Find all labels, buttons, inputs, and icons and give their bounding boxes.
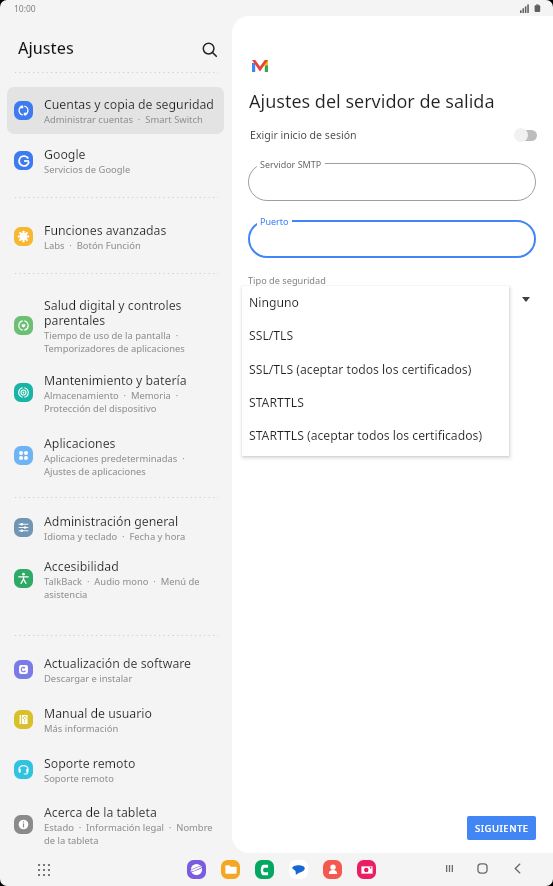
staticText: Ajustes de aplicaciones (44, 465, 146, 478)
button[interactable]: Cuentas y copia de seguridad (7, 87, 224, 134)
button[interactable]: Recents (437, 856, 462, 881)
button[interactable]: Mantenimiento y batería (7, 363, 224, 422)
button[interactable]: Acerca de la tableta (7, 795, 224, 854)
staticText: Ninguno (249, 294, 299, 311)
button[interactable]: Contacts (255, 860, 274, 879)
staticText: Soporte remoto (44, 772, 114, 785)
staticText: Protección del dispositivo (44, 402, 157, 415)
staticText: Estado · Información legal · Nombre (44, 821, 213, 834)
button[interactable]: Google (7, 137, 224, 184)
staticText: SSL/TLS (aceptar todos los certificados) (249, 361, 472, 378)
button[interactable]: Actualización de software (7, 646, 224, 693)
staticText: Ajustes del servidor de salida (249, 89, 495, 114)
button[interactable]: Soporte remoto (7, 746, 224, 793)
staticText: Tipo de seguridad (248, 274, 326, 287)
button[interactable]: Camera (357, 860, 376, 879)
staticText: Ajustes (18, 37, 74, 59)
staticText: Salud digital y controles parentales (44, 297, 182, 329)
staticText: Temporizadores de aplicaciones (44, 342, 185, 355)
staticText: SIGUIENTE (475, 822, 529, 835)
staticText: Administración general (44, 513, 179, 530)
button[interactable]: Search (195, 35, 224, 64)
button[interactable]: Accesibilidad (7, 549, 224, 608)
button[interactable]: Back (505, 856, 530, 881)
button[interactable]: Internet (187, 860, 206, 879)
button[interactable] (248, 163, 536, 201)
staticText: Aplicaciones predeterminadas · (44, 452, 185, 465)
button[interactable]: Account (323, 860, 342, 879)
button[interactable]: Ninguno (242, 286, 509, 319)
staticText: STARTTLS (249, 394, 304, 411)
staticText: Administrar cuentas · Smart Switch (44, 113, 203, 126)
staticText: Manual de usuario (44, 705, 152, 722)
staticText: Servicios de Google (44, 163, 131, 176)
staticText: Puerto (260, 215, 289, 227)
staticText: Google (44, 146, 86, 163)
staticText: Mantenimiento y batería (44, 372, 187, 389)
staticText: Labs · Botón Función (44, 239, 141, 252)
staticText: Servidor SMTP (260, 158, 322, 170)
staticText: TalkBack · Audio mono · Menú de (44, 575, 200, 588)
staticText: Almacenamiento · Memoria · (44, 389, 179, 402)
button[interactable]: Administración general (7, 504, 224, 551)
staticText: Funciones avanzadas (44, 222, 167, 239)
staticText: Descargar e instalar (44, 672, 133, 685)
staticText: Idioma y teclado · Fecha y hora (44, 530, 186, 543)
button[interactable] (248, 220, 536, 258)
button[interactable]: All apps (32, 858, 55, 881)
button[interactable]: Files (221, 860, 240, 879)
button[interactable]: Salud digital y controles parentales (7, 288, 224, 362)
staticText: asistencia (44, 588, 88, 601)
staticText: Cuentas y copia de seguridad (44, 96, 214, 113)
staticText: Soporte remoto (44, 755, 136, 772)
staticText: Accesibilidad (44, 558, 119, 575)
button[interactable]: SIGUIENTE (467, 816, 536, 840)
staticText: Actualización de software (44, 655, 192, 672)
staticText: Más información (44, 722, 119, 735)
button[interactable]: Exigir inicio de sesión (232, 122, 553, 148)
button[interactable]: Home (470, 856, 495, 881)
button[interactable]: Messages (289, 860, 308, 879)
staticText: 10:00 (14, 3, 36, 15)
button[interactable]: Manual de usuario (7, 696, 224, 743)
button[interactable]: Funciones avanzadas (7, 213, 224, 260)
button[interactable]: Aplicaciones (7, 426, 224, 485)
button[interactable]: SSL/TLS (242, 319, 509, 352)
button[interactable]: STARTTLS (aceptar todos los certificados… (242, 419, 509, 452)
staticText: Aplicaciones (44, 435, 116, 452)
staticText: SSL/TLS (249, 327, 294, 344)
staticText: STARTTLS (aceptar todos los certificados… (249, 427, 483, 444)
staticText: de la tableta (44, 834, 99, 847)
button[interactable]: STARTTLS (242, 386, 509, 419)
button[interactable]: SSL/TLS (aceptar todos los certificados) (242, 353, 509, 386)
staticText: Acerca de la tableta (44, 804, 157, 821)
staticText: Tiempo de uso de la pantalla · (44, 329, 179, 342)
staticText: Exigir inicio de sesión (250, 128, 357, 142)
